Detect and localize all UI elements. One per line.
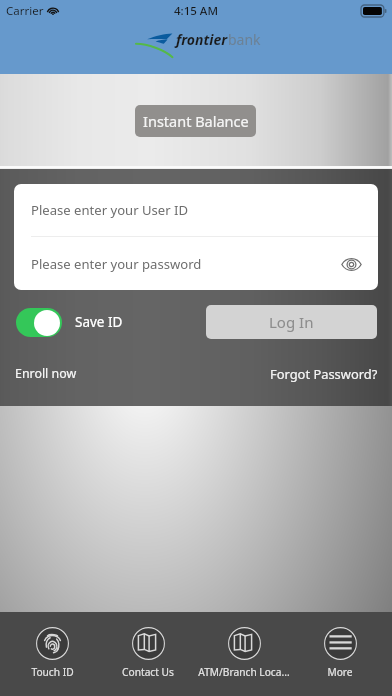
staticText: Save ID	[75, 313, 123, 331]
staticText: More	[327, 665, 353, 679]
staticText: frontier	[176, 30, 228, 49]
button[interactable]: Instant Balance	[135, 105, 256, 137]
staticText: 4:15 AM	[174, 3, 218, 19]
button[interactable]: Enroll now	[15, 363, 77, 384]
staticText: Enroll now	[15, 365, 77, 382]
button[interactable]: Save ID	[16, 308, 62, 337]
button[interactable]: Please enter your User ID	[14, 184, 378, 236]
button[interactable]: Log In	[206, 305, 377, 339]
button[interactable]: More	[292, 612, 388, 679]
staticText: Log In	[269, 312, 314, 332]
button[interactable]: Contact Us	[100, 612, 196, 679]
button[interactable]: Please enter your password	[14, 237, 378, 290]
staticText: Forgot Password?	[270, 365, 378, 383]
staticText: bank	[228, 30, 261, 49]
staticText: Please enter your User ID	[31, 201, 189, 219]
button[interactable]: Show password	[337, 250, 365, 278]
button[interactable]: Touch ID	[4, 612, 100, 679]
button[interactable]: Forgot Password?	[270, 363, 378, 385]
staticText: Carrier	[6, 3, 44, 19]
staticText: Instant Balance	[143, 111, 249, 131]
button[interactable]: ATM/Branch Loca...	[196, 612, 292, 679]
staticText: Please enter your password	[31, 255, 202, 273]
staticText: ATM/Branch Loca...	[198, 665, 290, 679]
staticText: Touch ID	[31, 665, 74, 679]
staticText: Contact Us	[122, 665, 174, 679]
